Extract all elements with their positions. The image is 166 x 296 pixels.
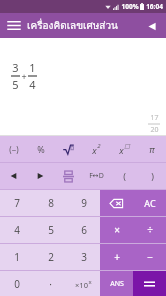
staticText: (−) [9,144,19,155]
button[interactable]: Backspace [100,190,133,216]
staticText: 5 [12,77,19,92]
staticText: 3 [81,250,87,264]
staticText: x [92,144,97,156]
staticText: F↔D [89,171,104,181]
button[interactable]: ANS [100,271,133,296]
button[interactable]: ÷ [133,217,166,243]
staticText: 1 [14,250,20,264]
button[interactable]: AC [133,190,166,216]
button[interactable]: − [133,244,166,270]
button[interactable]: ( [110,163,138,189]
button[interactable]: Fraction template [54,163,82,189]
staticText: + [114,250,120,264]
button[interactable]: 4 [0,217,34,243]
staticText: ) [151,170,154,182]
button[interactable]: Move left [0,163,27,189]
button[interactable]: 9 [67,190,100,216]
button[interactable]: Open navigation menu [5,17,22,34]
staticText: เครื่องคิดเลขเศษส่วน [27,18,118,34]
staticText: 7 [14,196,20,210]
staticText: 5 [48,223,54,237]
staticText: 4 [14,223,20,237]
button[interactable]: 5 [34,217,67,243]
staticText: □ [124,142,130,149]
staticText: AC [144,197,156,209]
button[interactable]: 6 [67,217,100,243]
staticText: ANS [110,279,124,289]
button[interactable]: Square root [54,136,82,162]
button[interactable]: · [34,271,67,296]
staticText: ×10 [75,280,88,290]
staticText: 20 [150,125,159,135]
button[interactable]: 2 [34,244,67,270]
button[interactable]: F↔D [82,163,110,189]
button[interactable]: 7 [0,190,34,216]
staticText: ( [123,170,126,182]
staticText: 16:04 [146,2,163,11]
button[interactable]: 0 [0,271,34,296]
button[interactable]: π [138,136,166,162]
button[interactable]: ×10 [67,271,100,296]
staticText: π [149,143,155,155]
button[interactable]: 1 [0,244,34,270]
button[interactable]: ) [138,163,166,189]
staticText: × [114,223,120,237]
staticText: 6 [81,223,87,237]
staticText: 17 [150,113,159,123]
staticText: 3 [12,60,19,75]
staticText: · [49,277,52,291]
staticText: 1 [29,60,36,75]
button[interactable]: 3 [67,244,100,270]
button[interactable]: 8 [34,190,67,216]
button[interactable]: % [27,136,54,162]
button[interactable]: Back [144,18,160,34]
button[interactable]: + [100,244,133,270]
staticText: 100% [121,2,139,11]
button[interactable]: x [82,136,110,162]
button[interactable]: x [110,136,138,162]
button[interactable]: Move right [27,163,54,189]
staticText: 4 [29,77,36,92]
staticText: + [21,70,27,82]
staticText: x [119,144,124,156]
staticText: 2 [97,142,101,150]
staticText: % [37,143,45,155]
staticText: 9 [81,196,87,210]
button[interactable]: (−) [0,136,27,162]
staticText: ÷ [147,223,153,237]
staticText: 0 [14,277,20,291]
button[interactable]: × [100,217,133,243]
button[interactable]: Equals [133,271,166,296]
staticText: 8 [48,196,54,210]
staticText: 2 [48,250,54,264]
staticText: x [88,278,92,286]
staticText: − [147,250,153,264]
